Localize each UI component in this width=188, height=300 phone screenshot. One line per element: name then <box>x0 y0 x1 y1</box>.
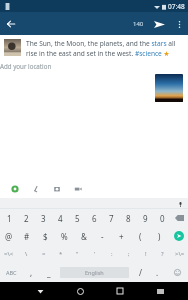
staticText: ; <box>128 250 130 258</box>
button[interactable]: $ <box>36 227 55 245</box>
staticText: , <box>30 267 33 278</box>
button[interactable]: ' <box>86 245 103 263</box>
staticText: @ <box>5 231 13 242</box>
staticText: 140 <box>133 20 144 28</box>
staticText: : <box>111 250 113 258</box>
button[interactable]: \ <box>18 245 35 263</box>
button[interactable]: ABC <box>0 263 23 282</box>
button[interactable]: + <box>112 227 131 245</box>
button[interactable]: 0 <box>154 209 171 227</box>
button[interactable]: Home <box>60 282 100 300</box>
staticText: 4 <box>58 213 63 224</box>
button[interactable]: Recent apps <box>100 282 140 300</box>
button[interactable]: Attach file <box>29 182 42 195</box>
button[interactable]: ! <box>137 245 154 263</box>
button[interactable]: 3 <box>35 209 52 227</box>
staticText: ( <box>139 231 142 242</box>
button[interactable]: * <box>52 245 69 263</box>
button[interactable]: 6 <box>86 209 103 227</box>
staticText: 7 <box>109 213 114 224</box>
staticText: ' <box>94 250 96 258</box>
staticText: % <box>61 231 68 242</box>
button[interactable]: # <box>18 227 36 245</box>
staticText: + <box>119 231 124 242</box>
button[interactable]: Add GIF <box>71 182 84 195</box>
staticText: $ <box>43 231 48 242</box>
button[interactable]: Location <box>8 182 21 195</box>
button[interactable]: English <box>60 267 129 278</box>
staticText: 0 <box>160 213 165 224</box>
button[interactable]: . <box>149 263 166 282</box>
staticText: =\< <box>4 250 14 258</box>
staticText: = <box>42 250 46 258</box>
staticText: \ <box>25 250 28 258</box>
button[interactable]: =\< <box>0 245 18 263</box>
button[interactable]: " <box>69 245 86 263</box>
button[interactable]: More options <box>170 15 188 33</box>
staticText: ABC <box>6 269 17 276</box>
button[interactable]: ( <box>131 227 150 245</box>
button[interactable]: 7 <box>103 209 120 227</box>
button[interactable]: Emoji <box>166 263 188 282</box>
button[interactable]: _ <box>40 263 57 282</box>
staticText: _ <box>47 267 51 278</box>
staticText: 6 <box>92 213 97 224</box>
button[interactable]: 9 <box>137 209 154 227</box>
button[interactable]: Take photo <box>50 182 63 195</box>
button[interactable]: % <box>55 227 74 245</box>
staticText: 3 <box>41 213 46 224</box>
staticText: & <box>81 231 87 242</box>
button[interactable]: = <box>35 245 52 263</box>
button[interactable]: / <box>132 263 149 282</box>
staticText: ? <box>161 250 164 258</box>
staticText: / <box>139 267 142 278</box>
staticText: * <box>59 250 63 258</box>
button[interactable]: Backspace <box>171 209 188 227</box>
button[interactable]: , <box>23 263 40 282</box>
staticText: ! <box>145 250 147 258</box>
button[interactable]: Add your location <box>0 58 188 74</box>
button[interactable]: >\= <box>171 245 188 263</box>
button[interactable]: Hide keyboard <box>140 282 180 300</box>
button[interactable]: ? <box>154 245 171 263</box>
staticText: 2 <box>24 213 29 224</box>
button[interactable]: : <box>103 245 120 263</box>
button[interactable]: 1 <box>0 209 18 227</box>
staticText: 07:48 <box>168 2 185 11</box>
button[interactable]: - <box>93 227 112 245</box>
staticText: Add your location <box>0 62 52 70</box>
button[interactable]: ) <box>150 227 169 245</box>
button[interactable]: Back <box>0 13 22 35</box>
button[interactable]: Attached photo <box>155 74 183 102</box>
button[interactable]: 2 <box>18 209 35 227</box>
button[interactable]: Send <box>148 13 170 35</box>
staticText: 1 <box>7 213 12 224</box>
staticText: >\= <box>175 250 185 258</box>
staticText: - <box>101 231 104 242</box>
staticText: The Sun, the Moon, the planets, and the … <box>26 39 184 58</box>
staticText: . <box>156 267 159 278</box>
staticText: " <box>76 250 79 258</box>
button[interactable]: Character count <box>128 14 148 34</box>
staticText: 8 <box>126 213 131 224</box>
staticText: # <box>24 231 30 242</box>
button[interactable]: 5 <box>69 209 86 227</box>
button[interactable]: ; <box>120 245 137 263</box>
staticText: English <box>85 269 104 276</box>
button[interactable]: Back <box>20 282 60 300</box>
button[interactable]: 8 <box>120 209 137 227</box>
button[interactable]: 4 <box>52 209 69 227</box>
staticText: 5 <box>75 213 80 224</box>
button[interactable]: Voice input <box>176 200 184 208</box>
staticText: ) <box>158 231 161 242</box>
staticText: 9 <box>143 213 148 224</box>
button[interactable]: @ <box>0 227 18 245</box>
button[interactable]: Send <box>169 227 188 245</box>
button[interactable]: & <box>74 227 93 245</box>
